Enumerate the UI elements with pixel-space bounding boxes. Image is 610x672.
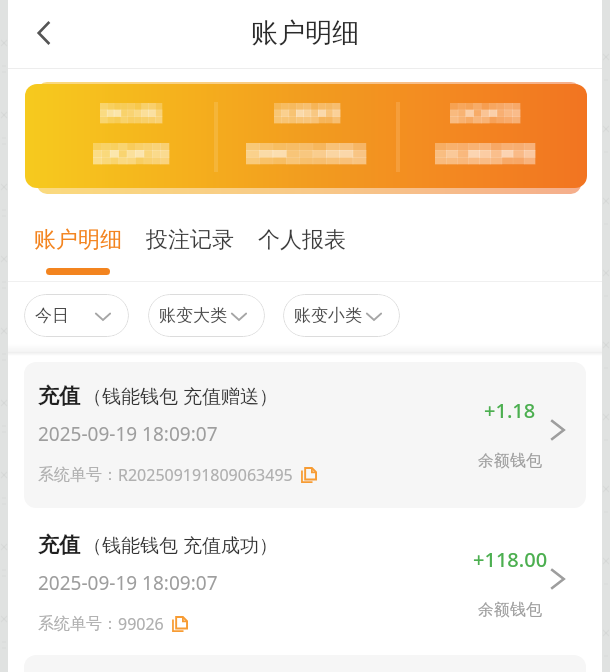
staticText: 账户明细: [251, 16, 359, 50]
staticText: 投注记录: [146, 226, 234, 254]
staticText: +1.18: [484, 397, 536, 424]
staticText: 账变小类: [294, 305, 362, 326]
other: Copy: [172, 616, 188, 632]
button[interactable]: 账变小类: [283, 294, 400, 337]
button[interactable]: 充值: [24, 362, 586, 508]
button[interactable]: 充值: [24, 511, 586, 651]
button[interactable]: 投注记录: [146, 226, 234, 268]
staticText: （钱能钱包 充值成功）: [83, 532, 278, 558]
other: Copy: [301, 467, 317, 483]
staticText: R202509191809063495: [118, 464, 293, 486]
staticText: 系统单号：: [38, 614, 118, 634]
staticText: 充值: [38, 383, 80, 409]
staticText: 账户明细: [34, 226, 122, 254]
staticText: 2025-09-19 18:09:07: [38, 421, 218, 447]
staticText: 99026: [118, 613, 164, 635]
staticText: 余额钱包: [478, 600, 542, 620]
button[interactable]: 账户明细: [34, 226, 122, 275]
staticText: 账变大类: [159, 305, 227, 326]
button[interactable]: 今日: [24, 294, 129, 337]
staticText: 个人报表: [258, 226, 346, 254]
staticText: 系统单号：: [38, 465, 118, 485]
button[interactable]: 账变大类: [148, 294, 265, 337]
staticText: （钱能钱包 充值赠送）: [83, 383, 278, 409]
staticText: 2025-09-19 18:09:07: [38, 570, 218, 596]
staticText: +118.00: [473, 546, 548, 573]
staticText: 充值: [38, 532, 80, 558]
staticText: 今日: [35, 305, 69, 326]
button[interactable]: [25, 84, 587, 188]
button[interactable]: 个人报表: [258, 226, 346, 268]
button[interactable]: Back: [22, 11, 66, 55]
staticText: 余额钱包: [478, 451, 542, 471]
